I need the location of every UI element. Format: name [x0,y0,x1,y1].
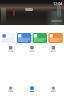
button[interactable]: Tab [21,85,43,93]
button[interactable]: Tile [33,33,47,43]
button[interactable]: Tab [0,85,21,93]
button[interactable]: Tile [1,33,16,43]
button[interactable]: Tile [48,33,63,43]
button[interactable]: Tile [17,33,31,43]
button[interactable]: Action [21,46,43,52]
button[interactable]: Tab [43,85,64,93]
button[interactable]: Action [0,46,21,52]
staticText: 12:04 [53,1,62,6]
button[interactable]: Action [43,46,64,52]
